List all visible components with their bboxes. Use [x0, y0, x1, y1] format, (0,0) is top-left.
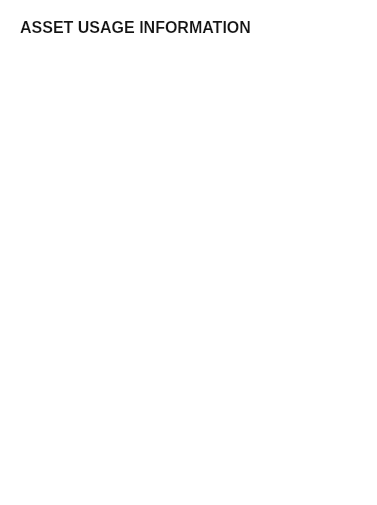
staticText: ASSET USAGE INFORMATION: [20, 19, 251, 37]
